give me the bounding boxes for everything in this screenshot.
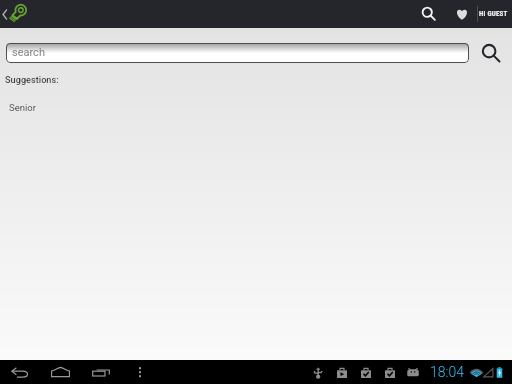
staticText: Senior [9, 102, 36, 113]
button[interactable]: Back [8, 360, 32, 384]
staticText: HI GUEST [479, 10, 508, 18]
button[interactable]: search [6, 43, 469, 63]
button[interactable]: HI GUEST [475, 0, 512, 28]
button[interactable]: Back to home [0, 0, 35, 28]
staticText: 18:04 [430, 364, 465, 380]
button[interactable]: Home [48, 360, 72, 384]
button[interactable]: Favorites [451, 0, 473, 28]
staticText: search [12, 46, 45, 59]
button[interactable]: Senior [0, 100, 512, 114]
button[interactable]: Search [478, 39, 504, 67]
button[interactable]: Recent apps [89, 360, 113, 384]
staticText: Suggestions: [5, 74, 59, 85]
button[interactable]: More options [131, 363, 149, 381]
button[interactable]: Search [416, 0, 442, 28]
